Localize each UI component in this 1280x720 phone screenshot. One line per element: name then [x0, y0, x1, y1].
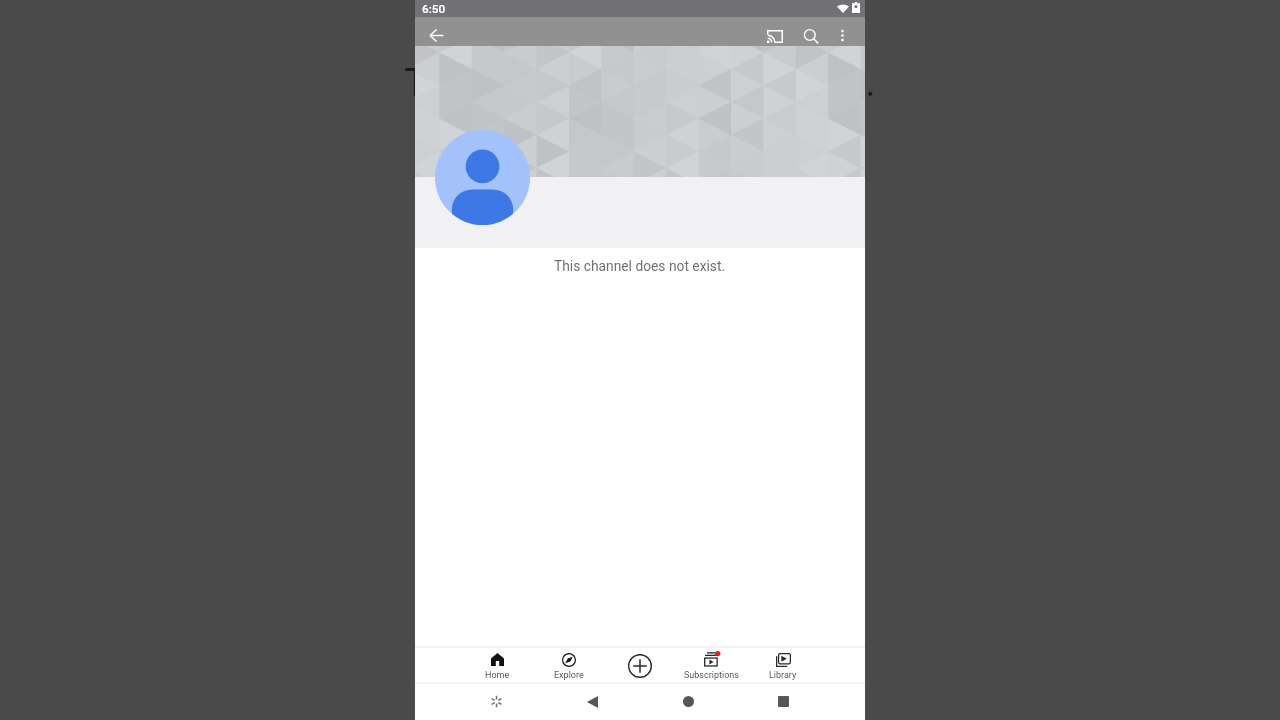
staticText: Library: [769, 670, 797, 681]
staticText: Home: [485, 670, 510, 681]
button[interactable]: Back: [556, 683, 628, 720]
button[interactable]: Recents: [747, 683, 819, 720]
button[interactable]: Cast: [761, 24, 789, 49]
button[interactable]: Back: [423, 22, 450, 49]
button[interactable]: Subscriptions: [675, 647, 747, 683]
staticText: 6:50: [422, 2, 446, 16]
button[interactable]: Search: [798, 23, 827, 52]
button[interactable]: Home: [652, 683, 724, 720]
button[interactable]: Library: [747, 647, 819, 683]
button[interactable]: Home: [461, 647, 533, 683]
staticText: This channel does not exist.: [554, 258, 726, 274]
staticText: Explore: [554, 670, 584, 681]
staticText: This channel does not exist.: [0, 61, 1280, 106]
button[interactable]: Explore: [533, 647, 605, 683]
staticText: Subscriptions: [684, 670, 739, 681]
button[interactable]: More options: [832, 23, 853, 50]
button[interactable]: Create: [604, 647, 676, 683]
button[interactable]: IME switcher: [460, 683, 532, 720]
